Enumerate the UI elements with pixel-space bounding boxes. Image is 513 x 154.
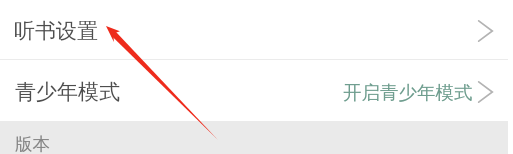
button[interactable]: 青少年模式	[0, 60, 508, 121]
staticText: 听书设置	[14, 18, 98, 44]
staticText: 开启青少年模式	[343, 81, 473, 104]
staticText: 版本	[15, 133, 50, 154]
staticText: 青少年模式	[15, 79, 120, 105]
button[interactable]: 听书设置	[0, 0, 508, 59]
other: 进入听书设置	[477, 20, 494, 42]
other: 开启青少年模式	[477, 81, 494, 103]
